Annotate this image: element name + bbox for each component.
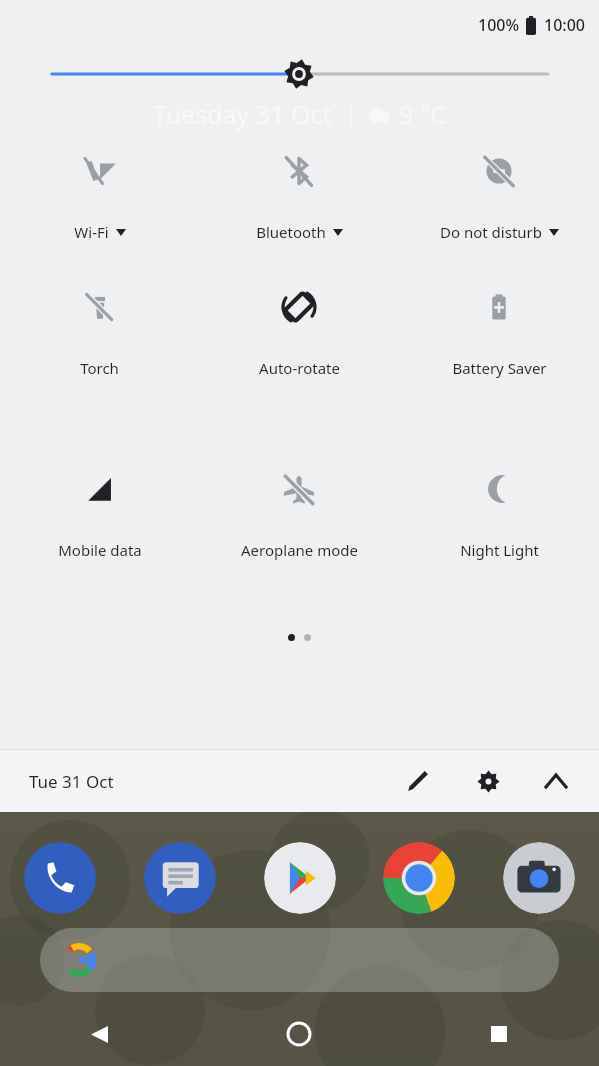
staticText: Aeroplane mode: [241, 540, 358, 560]
button[interactable]: Settings: [465, 758, 511, 804]
button[interactable]: Home: [199, 1006, 399, 1062]
button[interactable]: Phone: [24, 842, 96, 914]
button[interactable]: Brightness: [0, 50, 599, 90]
button[interactable]: Night Light: [399, 446, 599, 628]
button[interactable]: Play Store: [264, 842, 336, 914]
button[interactable]: Do not disturb: [399, 136, 599, 264]
button[interactable]: Back: [0, 1006, 199, 1062]
button[interactable]: Battery Saver: [399, 264, 599, 446]
staticText: Do not disturb: [440, 222, 542, 242]
staticText: Night Light: [460, 540, 539, 560]
button[interactable]: Torch: [0, 264, 199, 446]
button[interactable]: Aeroplane mode: [199, 446, 399, 628]
staticText: Wi-Fi: [74, 222, 109, 242]
staticText: Bluetooth: [256, 222, 326, 242]
button[interactable]: Collapse: [533, 758, 579, 804]
button[interactable]: Messages: [144, 842, 216, 914]
staticText: 100%: [478, 14, 520, 36]
button[interactable]: Chrome: [383, 842, 455, 914]
button[interactable]: Wi-Fi: [0, 136, 199, 264]
button[interactable]: Auto-rotate: [199, 264, 399, 446]
staticText: 10:00: [544, 14, 585, 36]
button[interactable]: Bluetooth: [199, 136, 399, 264]
button[interactable]: Edit: [395, 758, 441, 804]
staticText: Tue 31 Oct: [29, 770, 114, 793]
staticText: Auto-rotate: [259, 358, 340, 378]
button[interactable]: Recents: [399, 1006, 599, 1062]
staticText: Mobile data: [58, 540, 142, 560]
button[interactable]: Mobile data: [0, 446, 199, 628]
staticText: Torch: [80, 358, 119, 378]
button[interactable]: [40, 928, 559, 992]
button[interactable]: Camera: [503, 842, 575, 914]
staticText: Battery Saver: [452, 358, 547, 378]
